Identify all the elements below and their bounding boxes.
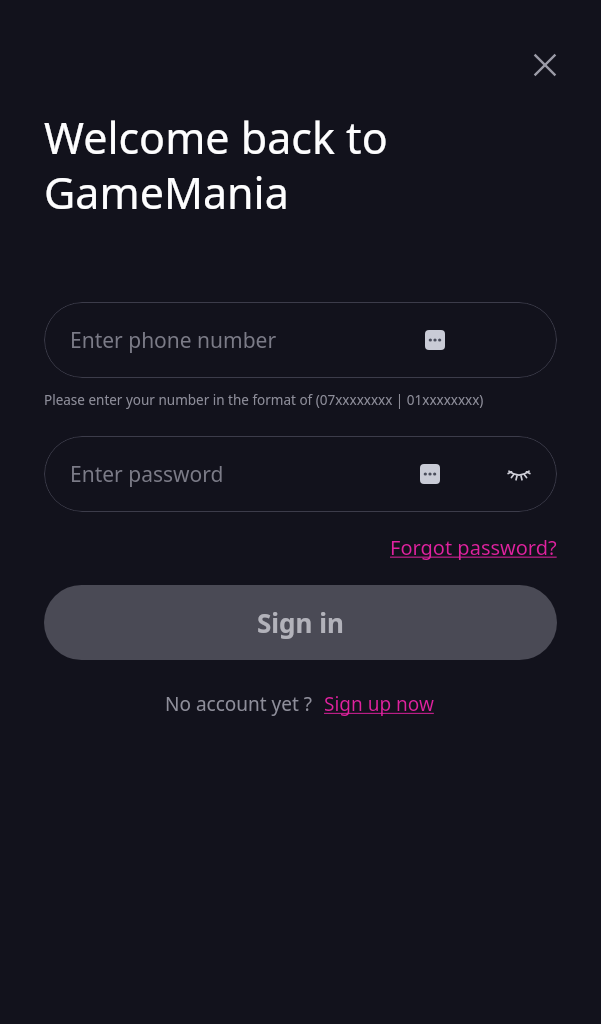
button[interactable]: Sign in (44, 585, 557, 660)
staticText: Welcome back to GameMania (44, 108, 388, 222)
button[interactable]: Close (521, 41, 569, 89)
button[interactable]: Show password (502, 457, 536, 491)
staticText: Please enter your number in the format o… (44, 391, 484, 409)
staticText: Sign up now (324, 691, 434, 717)
button[interactable]: Autofill (420, 464, 440, 484)
button[interactable]: Enter phone number (44, 302, 557, 378)
staticText: Forgot password? (390, 534, 557, 561)
staticText: Sign in (257, 605, 344, 640)
button[interactable]: Forgot password? (388, 531, 559, 564)
button[interactable]: Sign up now (322, 688, 436, 720)
button[interactable]: Enter password (44, 436, 557, 512)
staticText: No account yet ? (165, 691, 313, 717)
button[interactable]: Autofill (425, 330, 445, 350)
staticText: Enter password (70, 460, 224, 489)
staticText: Enter phone number (70, 326, 277, 355)
